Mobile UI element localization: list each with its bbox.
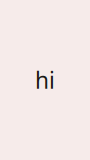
staticText: hi <box>35 65 55 95</box>
